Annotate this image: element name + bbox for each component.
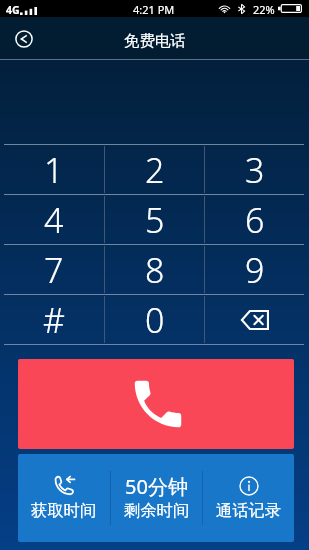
staticText: 6: [245, 197, 265, 243]
other: Backspace: [240, 310, 269, 330]
staticText: #: [43, 297, 65, 343]
button[interactable]: Call: [18, 359, 294, 449]
staticText: 获取时间: [31, 500, 97, 521]
staticText: 8: [145, 247, 165, 293]
button[interactable]: 3: [205, 145, 304, 194]
button[interactable]: 1: [4, 145, 104, 194]
staticText: 1: [44, 147, 64, 193]
staticText: 9: [245, 247, 265, 293]
button[interactable]: 6: [205, 195, 304, 244]
button[interactable]: 4: [4, 195, 104, 244]
button[interactable]: 9: [205, 245, 304, 294]
staticText: 4: [44, 197, 64, 243]
other: Call records: [239, 476, 259, 496]
button[interactable]: Get time: [18, 454, 110, 542]
other: Get time: [52, 473, 77, 498]
staticText: 2: [145, 147, 165, 193]
button[interactable]: #: [4, 295, 104, 344]
staticText: 通话记录: [216, 500, 282, 521]
button[interactable]: Back: [7, 22, 40, 55]
button[interactable]: 50分钟: [111, 454, 202, 542]
staticText: 50分钟: [125, 473, 188, 500]
button[interactable]: 2: [105, 145, 204, 194]
staticText: 3: [245, 147, 265, 193]
staticText: 免费电话: [124, 31, 186, 51]
button[interactable]: Call records: [203, 454, 294, 542]
button[interactable]: 7: [4, 245, 104, 294]
button[interactable]: 0: [105, 295, 204, 344]
button[interactable]: 8: [105, 245, 204, 294]
staticText: 0: [145, 297, 165, 343]
staticText: 5: [145, 197, 165, 243]
staticText: 4G: [6, 3, 20, 17]
staticText: 7: [44, 247, 64, 293]
button[interactable]: Backspace: [205, 295, 304, 344]
staticText: 22%: [253, 2, 275, 17]
button[interactable]: 5: [105, 195, 204, 244]
staticText: 4:21 PM: [133, 2, 175, 17]
staticText: 剩余时间: [124, 500, 190, 521]
